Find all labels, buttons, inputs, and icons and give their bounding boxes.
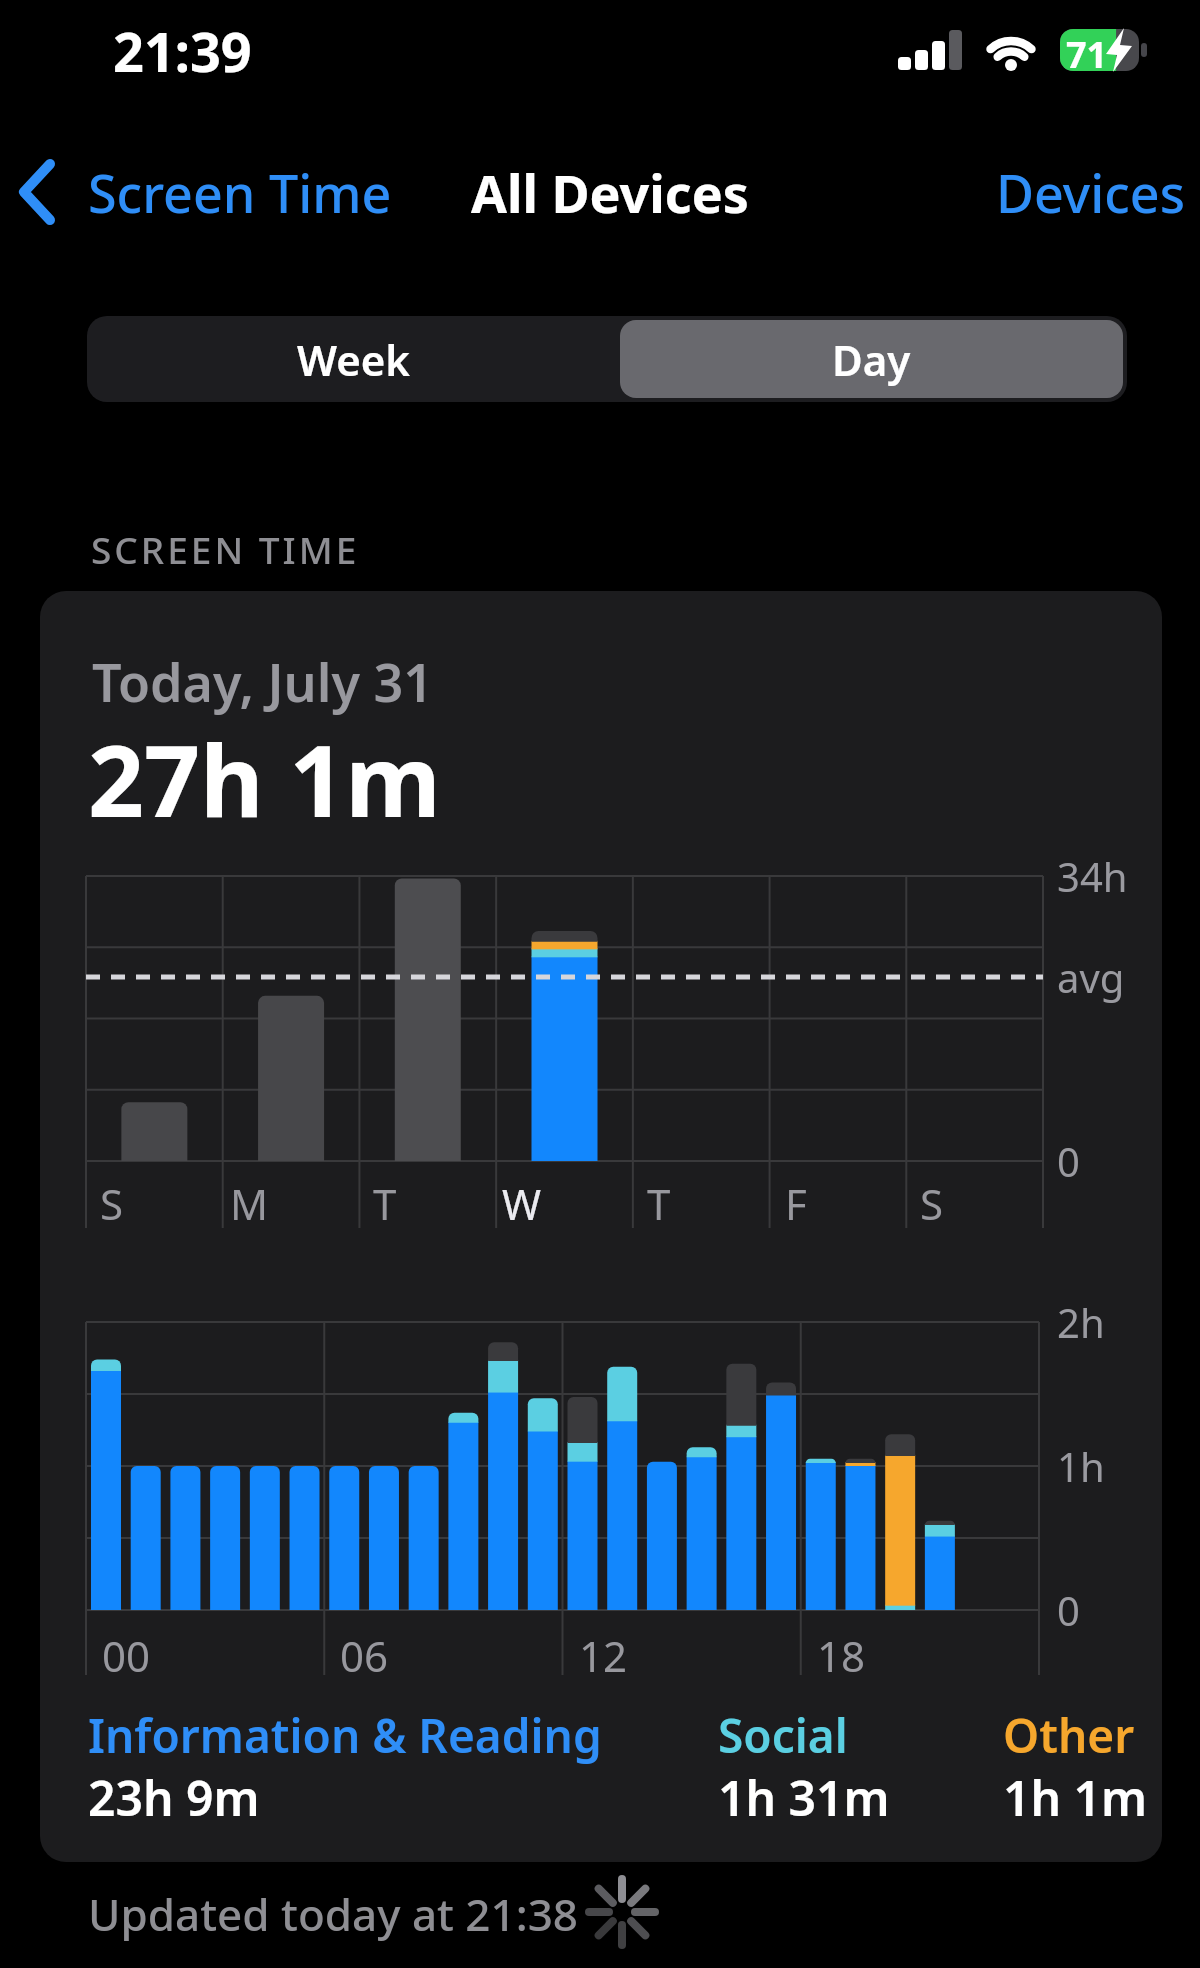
button[interactable]: Week (87, 316, 620, 402)
staticText: 2h (1057, 1295, 1105, 1349)
staticText: 27h 1m (88, 712, 441, 845)
staticText: Updated today at 21:38 (88, 1884, 578, 1944)
staticText: avg (1057, 950, 1125, 1004)
staticText: Other (1003, 1704, 1135, 1767)
staticText: 0 (1057, 1583, 1080, 1637)
staticText: SCREEN TIME (91, 524, 360, 574)
button[interactable]: Devices (940, 156, 1185, 228)
staticText: 0 (1057, 1134, 1080, 1188)
staticText: 23h 9m (88, 1765, 260, 1830)
staticText: Social (718, 1704, 848, 1767)
button[interactable]: Screen Time (10, 156, 410, 228)
staticText: Week (297, 331, 411, 388)
staticText: T (373, 1175, 397, 1232)
staticText: S (100, 1175, 124, 1232)
staticText: 00 (102, 1627, 151, 1684)
staticText: Today, July 31 (92, 646, 433, 717)
staticText: All Devices (471, 157, 749, 228)
staticText: T (647, 1175, 671, 1232)
staticText: 1h 1m (1003, 1765, 1148, 1830)
staticText: 34h (1057, 849, 1128, 903)
staticText: 06 (340, 1627, 389, 1684)
staticText: 1h (1057, 1439, 1105, 1493)
staticText: 71 (1066, 30, 1108, 79)
staticText: 12 (579, 1627, 628, 1684)
staticText: Day (832, 331, 911, 388)
button[interactable]: Day (620, 320, 1123, 398)
staticText: 21:39 (113, 14, 252, 88)
staticText: 18 (817, 1627, 866, 1684)
staticText: W (502, 1175, 542, 1232)
staticText: M (230, 1175, 269, 1232)
staticText: Screen Time (88, 157, 392, 228)
staticText: Information & Reading (88, 1704, 602, 1767)
staticText: 1h 31m (718, 1765, 890, 1830)
staticText: F (785, 1175, 807, 1232)
staticText: Devices (996, 157, 1185, 228)
staticText: S (920, 1175, 944, 1232)
